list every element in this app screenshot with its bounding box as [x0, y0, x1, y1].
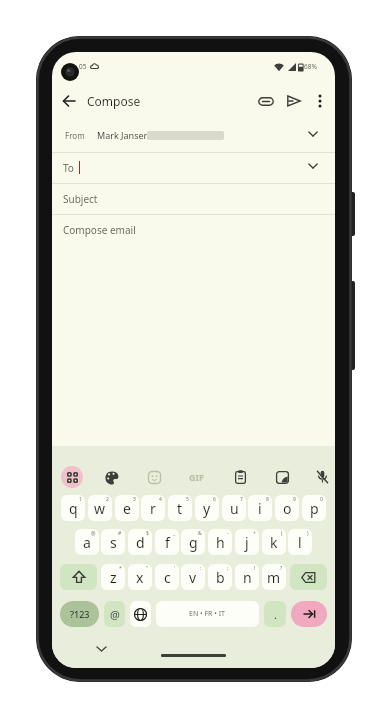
button[interactable]: n [235, 564, 259, 590]
button[interactable]: e [115, 495, 139, 521]
button[interactable]: t [168, 495, 192, 521]
staticText: p [310, 499, 319, 518]
staticText: 3 [133, 496, 136, 503]
button[interactable]: b [208, 564, 232, 590]
staticText: y [203, 499, 211, 518]
staticText: @ [91, 530, 96, 537]
staticText: ; [227, 565, 229, 572]
staticText: ! [254, 565, 256, 572]
button[interactable] [290, 564, 327, 590]
staticText: l [298, 533, 302, 552]
button[interactable]: . [264, 601, 286, 627]
button[interactable] [61, 466, 83, 488]
staticText: b [216, 568, 225, 587]
staticText: - [227, 530, 229, 537]
button[interactable]: GIF [189, 471, 204, 483]
staticText: To [63, 161, 74, 175]
button[interactable]: r [141, 495, 165, 521]
button[interactable]: Subject [52, 184, 335, 214]
staticText: From [65, 130, 85, 141]
staticText: ? [280, 565, 283, 572]
staticText: $ [146, 530, 149, 537]
button[interactable] [231, 468, 249, 486]
button[interactable] [60, 564, 97, 590]
staticText: 9 [293, 496, 296, 503]
button[interactable] [145, 468, 163, 486]
button[interactable]: ?123 [60, 601, 99, 627]
button[interactable]: j [235, 529, 259, 555]
staticText: 7 [240, 496, 243, 503]
staticText: & [198, 530, 202, 537]
button[interactable]: o [275, 495, 299, 521]
button[interactable]: g [181, 529, 205, 555]
button[interactable]: q [61, 495, 85, 521]
button[interactable]: s [101, 529, 125, 555]
button[interactable] [282, 89, 306, 113]
button[interactable]: m [262, 564, 286, 590]
staticText: c [164, 568, 171, 587]
staticText: t [177, 499, 183, 518]
staticText: Compose [87, 93, 141, 109]
button[interactable]: v [181, 564, 205, 590]
button[interactable]: x [128, 564, 152, 590]
staticText: m [267, 568, 281, 587]
staticText: 6 [213, 496, 216, 503]
button[interactable]: f [155, 529, 179, 555]
button[interactable]: d [128, 529, 152, 555]
staticText: 0 [320, 496, 323, 503]
staticText: i [258, 499, 262, 518]
button[interactable]: a [75, 529, 99, 555]
button[interactable] [273, 468, 291, 486]
button[interactable] [56, 88, 82, 114]
button[interactable]: @ [104, 601, 125, 627]
staticText: 1 [79, 496, 82, 503]
staticText: " [146, 565, 149, 572]
staticText: q [69, 499, 78, 518]
staticText: 2 [106, 496, 109, 503]
staticText: ) [307, 530, 309, 537]
button[interactable] [308, 89, 332, 113]
staticText: s [110, 533, 117, 552]
button[interactable]: u [222, 495, 246, 521]
staticText: z [110, 568, 117, 587]
staticText: * [119, 565, 122, 572]
button[interactable]: h [208, 529, 232, 555]
staticText: h [216, 533, 225, 552]
staticText: Mark Jansen [97, 129, 150, 141]
button[interactable]: l [288, 529, 312, 555]
staticText: x [136, 568, 144, 587]
button[interactable] [102, 468, 120, 486]
staticText: 4 [159, 496, 162, 503]
button[interactable]: To [52, 153, 335, 183]
staticText: Subject [63, 192, 98, 206]
staticText: # [118, 530, 122, 537]
button[interactable]: i [248, 495, 272, 521]
button[interactable]: z [101, 564, 125, 590]
button[interactable] [291, 601, 327, 627]
button[interactable]: w [88, 495, 112, 521]
staticText: + [253, 530, 256, 537]
button[interactable] [130, 601, 151, 627]
button[interactable]: c [155, 564, 179, 590]
staticText: g [189, 533, 198, 552]
staticText: o [283, 499, 292, 518]
staticText: 05 [79, 62, 87, 71]
button[interactable] [313, 468, 331, 486]
staticText: : [200, 565, 202, 572]
staticText: r [150, 499, 156, 518]
button[interactable]: p [302, 495, 326, 521]
button[interactable]: Compose email [52, 215, 335, 245]
button[interactable]: From [52, 118, 335, 153]
staticText: EN • FR • IT [189, 609, 226, 619]
staticText: j [245, 533, 249, 552]
button[interactable]: k [262, 529, 286, 555]
staticText: @ [110, 607, 120, 622]
button[interactable]: EN • FR • IT [156, 601, 259, 627]
button[interactable]: y [195, 495, 219, 521]
staticText: Compose email [63, 223, 136, 237]
staticText: 68% [304, 62, 317, 71]
button[interactable] [254, 89, 278, 113]
staticText: a [83, 533, 91, 552]
staticText: _ [173, 530, 176, 537]
staticText: 5 [186, 496, 189, 503]
